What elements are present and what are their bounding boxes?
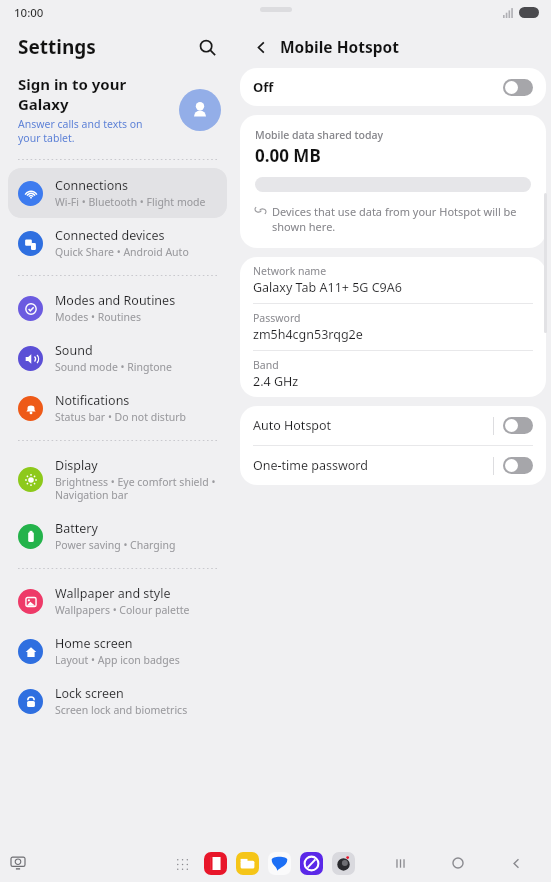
button[interactable]: Sign in to your [0,68,235,160]
button[interactable]: Toggle [503,417,533,434]
staticText: 10:00 [14,5,44,21]
staticText: Mobile data shared today [255,128,383,142]
staticText: Answer calls and texts on [18,117,143,131]
button[interactable]: Wallpaper and style [8,576,227,626]
staticText: Password [253,311,301,325]
button[interactable]: Recents [385,848,415,878]
button[interactable]: Toggle [503,79,533,96]
button[interactable]: Home screen [8,626,227,676]
button[interactable]: Files [236,852,259,875]
button[interactable]: Display [8,448,227,511]
button[interactable]: One-time password [240,446,546,485]
button[interactable]: Toggle [503,457,533,474]
staticText: Sound mode • Ringtone [55,360,172,374]
staticText: Network name [253,264,327,278]
button[interactable]: Off [240,68,546,106]
staticText: Power saving • Charging [55,538,176,552]
button[interactable]: Band [240,351,546,397]
staticText: Home screen [55,635,133,652]
staticText: Wi-Fi • Bluetooth • Flight mode [55,195,206,209]
button[interactable]: Messages [268,852,291,875]
staticText: Layout • App icon badges [55,653,180,667]
staticText: Wallpapers • Colour palette [55,603,190,617]
staticText: Galaxy Tab A11+ 5G C9A6 [253,279,402,296]
button[interactable]: Network name [240,257,546,303]
button[interactable]: Internet [300,852,323,875]
button[interactable]: Home [443,848,473,878]
staticText: 0.00 MB [255,144,321,167]
staticText: 2.4 GHz [253,373,299,390]
staticText: Quick Share • Android Auto [55,245,189,259]
staticText: Band [253,358,279,372]
staticText: Connected devices [55,227,165,244]
staticText: Sign in to your [18,74,127,94]
staticText: your tablet. [18,131,75,145]
staticText: Battery [55,520,98,537]
button[interactable]: All apps [171,853,193,875]
button[interactable]: Battery [8,511,227,561]
button[interactable]: Auto Hotspot [240,406,546,445]
button[interactable]: Notifications [8,383,227,433]
staticText: Mobile Hotspot [280,36,399,57]
staticText: Galaxy [18,94,69,114]
staticText: One-time password [253,457,493,474]
staticText: Modes and Routines [55,292,176,309]
staticText: Devices that use data from your Hotspot … [272,204,531,234]
staticText: Off [253,78,274,96]
staticText: Modes • Routines [55,310,142,324]
staticText: Connections [55,177,128,194]
button[interactable]: Search [193,33,221,61]
staticText: Wallpaper and style [55,585,171,602]
button[interactable]: Recents panel [6,851,30,875]
button[interactable]: Connected devices [8,218,227,268]
button[interactable]: Camera [332,852,355,875]
staticText: Brightness • Eye comfort shield • Naviga… [55,475,219,502]
button[interactable]: Back [249,35,273,59]
staticText: Auto Hotspot [253,417,493,434]
button[interactable]: Password [240,304,546,350]
button[interactable]: Lock screen [8,676,227,726]
staticText: Status bar • Do not disturb [55,410,186,424]
staticText: Sound [55,342,93,359]
button[interactable]: Notes [204,852,227,875]
staticText: Lock screen [55,685,124,702]
staticText: Settings [18,34,96,60]
button[interactable]: Modes and Routines [8,283,227,333]
staticText: Notifications [55,392,130,409]
button[interactable]: Sound [8,333,227,383]
staticText: Screen lock and biometrics [55,703,188,717]
button[interactable]: Back [501,848,531,878]
staticText: zm5h4cgn53rqg2e [253,326,363,343]
button[interactable]: Connections [8,168,227,218]
staticText: Display [55,457,98,474]
